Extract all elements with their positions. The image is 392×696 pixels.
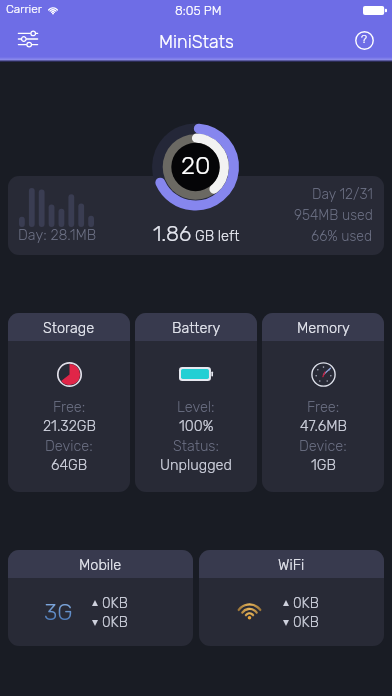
staticText: WiFi bbox=[278, 556, 305, 573]
button[interactable]: Storage bbox=[8, 313, 130, 492]
staticText: Memory bbox=[297, 319, 350, 336]
staticText: ? bbox=[361, 32, 368, 46]
staticText: 0KB bbox=[293, 595, 319, 612]
staticText: 100% bbox=[179, 417, 214, 434]
staticText: Free: bbox=[53, 398, 86, 415]
staticText: Carrier bbox=[6, 2, 43, 16]
staticText: 0KB bbox=[102, 614, 128, 631]
staticText: Mobile bbox=[79, 556, 122, 573]
button[interactable]: Mobile bbox=[8, 550, 193, 646]
button[interactable]: Help bbox=[345, 21, 383, 59]
staticText: 20 bbox=[181, 151, 211, 181]
staticText: 8:05 PM bbox=[175, 3, 222, 18]
staticText: Battery bbox=[172, 319, 221, 336]
staticText: 0KB bbox=[102, 595, 128, 612]
staticText: 954MB used bbox=[294, 207, 373, 224]
staticText: GB left bbox=[195, 227, 240, 244]
button[interactable]: Memory bbox=[262, 313, 384, 492]
staticText: 21.32GB bbox=[43, 417, 96, 434]
staticText: 3G bbox=[44, 598, 73, 625]
staticText: 66% used bbox=[311, 228, 373, 245]
staticText: Device: bbox=[299, 437, 347, 454]
button[interactable]: WiFi bbox=[199, 550, 384, 646]
staticText: Day 12/31 bbox=[312, 186, 373, 203]
staticText: Status: bbox=[173, 437, 219, 454]
staticText: Free: bbox=[307, 398, 340, 415]
staticText: 64GB bbox=[51, 456, 88, 473]
staticText: Device: bbox=[45, 437, 93, 454]
staticText: Unplugged bbox=[160, 456, 232, 473]
staticText: Level: bbox=[177, 398, 215, 415]
staticText: Day: 28.1MB bbox=[18, 226, 97, 243]
staticText: 47.6MB bbox=[300, 417, 347, 434]
staticText: MiniStats bbox=[159, 31, 234, 52]
button[interactable]: Battery bbox=[135, 313, 257, 492]
staticText: 1.86 bbox=[153, 221, 192, 246]
staticText: 1GB bbox=[311, 456, 336, 473]
staticText: 0KB bbox=[293, 614, 319, 631]
button[interactable]: Settings bbox=[8, 19, 48, 59]
staticText: Storage bbox=[43, 319, 95, 336]
